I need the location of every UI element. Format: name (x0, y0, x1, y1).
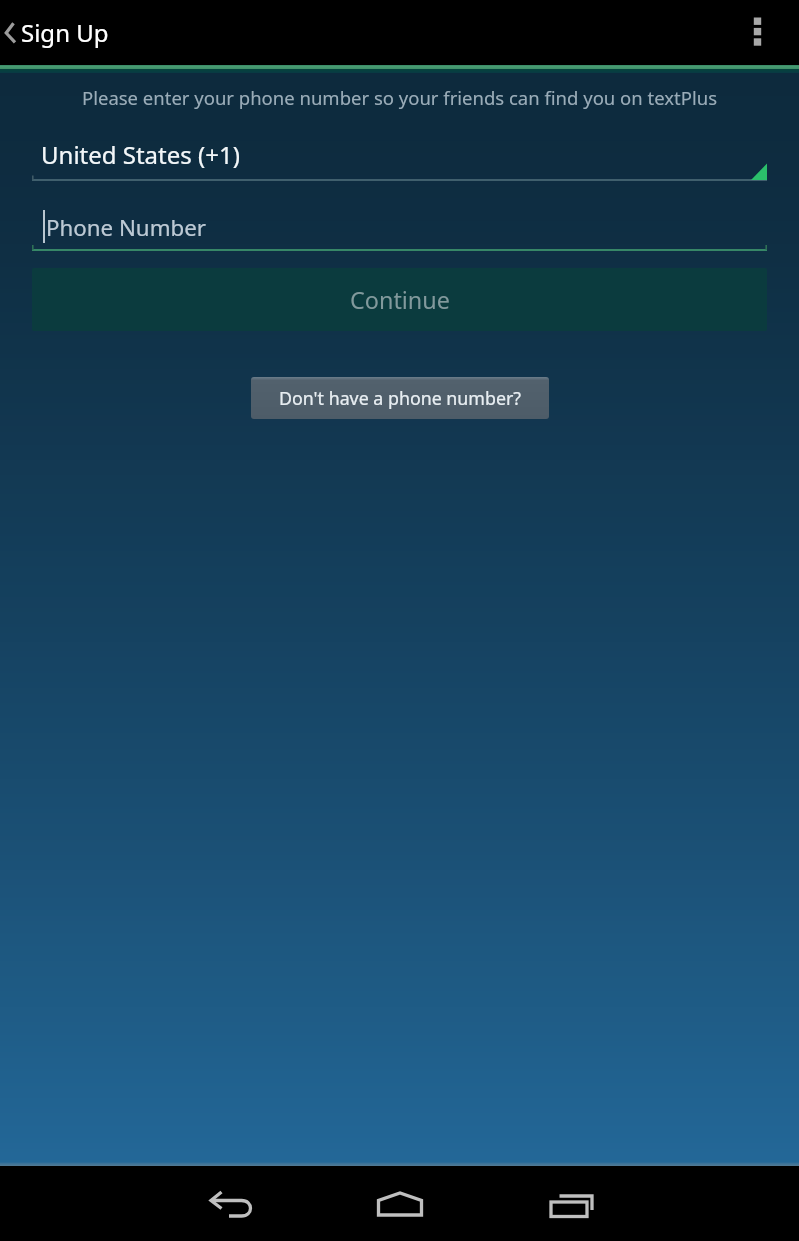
button[interactable]: Home (315, 1166, 485, 1241)
staticText: Phone Number (46, 212, 206, 242)
staticText: United States (+1) (41, 138, 240, 171)
staticText: Continue (350, 284, 450, 316)
staticText: Please enter your phone number so your f… (0, 85, 799, 110)
button[interactable]: Back (144, 1166, 315, 1241)
button[interactable]: Continue (32, 268, 767, 331)
button[interactable]: Don't have a phone number? (251, 377, 549, 419)
staticText: Sign Up (21, 16, 109, 49)
button[interactable]: More options (737, 0, 799, 65)
button[interactable]: United States (+1) (32, 130, 767, 182)
button[interactable]: Sign Up (0, 0, 119, 65)
staticText: Don't have a phone number? (279, 386, 522, 410)
button[interactable]: Recent apps (485, 1166, 655, 1241)
button[interactable]: Phone Number (32, 202, 767, 252)
